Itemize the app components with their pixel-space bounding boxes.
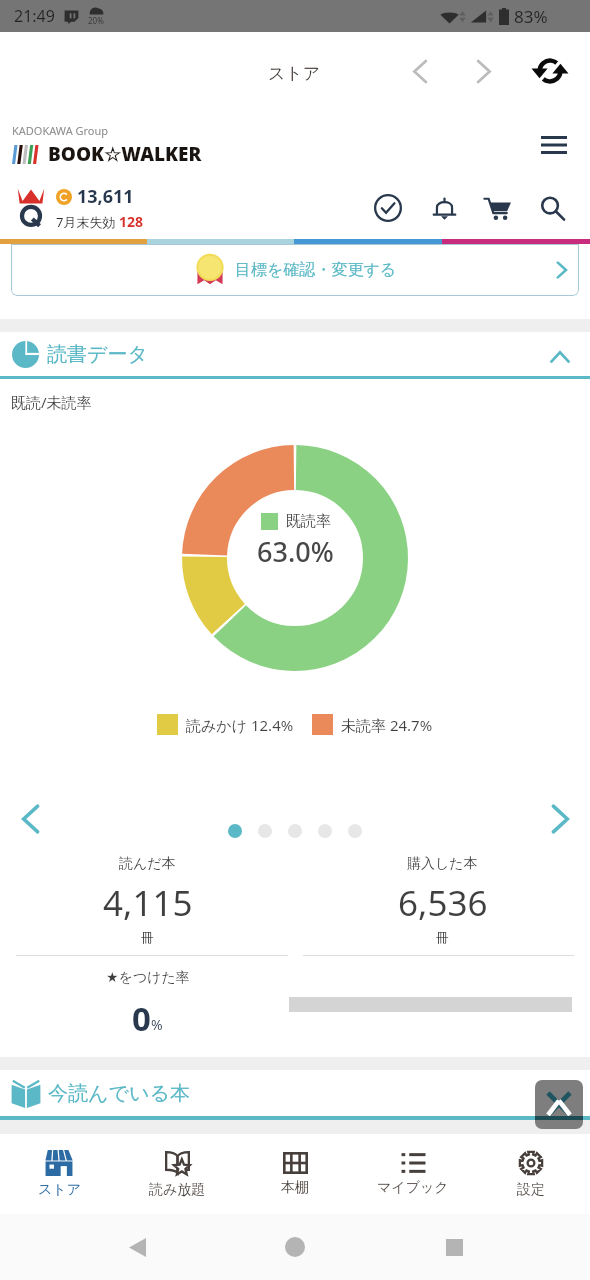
button[interactable]: Back [397,48,443,94]
button[interactable]: Home [273,1225,317,1269]
button[interactable]: Forward [461,48,507,94]
staticText: 冊 [436,929,449,945]
staticText: 未読率 24.7% [341,715,433,735]
staticText: 7月末失効 [56,213,119,231]
staticText: 83% [514,5,548,28]
staticText: 読みかけ 12.4% [186,715,294,735]
button[interactable]: Search [529,185,575,231]
staticText: 128 [119,212,144,231]
staticText: KADOKAWA Group [12,123,109,138]
button[interactable]: Previous [10,799,50,839]
staticText: ストア [38,1181,81,1199]
button[interactable]: Next [540,799,580,839]
staticText: 既読率 [286,512,331,531]
staticText: 購入した本 [407,855,478,873]
staticText: 読み放題 [149,1181,206,1199]
button[interactable]: Back [115,1225,159,1269]
staticText: 0 [132,996,151,1034]
staticText: 本棚 [281,1179,309,1197]
staticText: ★をつけた率 [106,969,190,987]
staticText: 設定 [517,1181,545,1199]
button[interactable]: 目標を確認・変更する [11,244,579,296]
staticText: BOOK☆WALKER [48,141,202,167]
staticText: 目標を確認・変更する [235,260,397,280]
staticText: 21:49 [14,5,55,27]
button[interactable]: Notifications [421,185,467,231]
staticText: マイブック [377,1179,449,1197]
button[interactable]: Cart [474,185,520,231]
button[interactable]: ストア [0,1141,118,1208]
staticText: 4,115 [103,879,193,927]
button[interactable]: 本棚 [236,1143,354,1206]
staticText: 6,536 [398,879,488,927]
staticText: 読書データ [47,342,148,367]
staticText: 13,611 [77,184,134,209]
button[interactable]: Recents [432,1225,476,1269]
button[interactable]: Close [535,1080,583,1129]
staticText: 既読/未読率 [11,392,92,412]
staticText: ストア [268,63,321,84]
staticText: 冊 [141,929,154,945]
button[interactable]: Menu [532,123,576,167]
button[interactable]: Reload [527,48,573,94]
button[interactable]: マイブック [354,1143,472,1206]
button[interactable]: 設定 [472,1141,590,1208]
staticText: % [151,1015,163,1034]
button[interactable]: 読み放題 [118,1141,236,1208]
button[interactable]: Collapse [542,339,578,375]
staticText: 20% [88,15,104,26]
staticText: 63.0% [257,533,334,570]
staticText: 今読んでいる本 [48,1081,190,1106]
button[interactable]: 読書データ [0,332,590,376]
staticText: 読んだ本 [119,855,176,873]
button[interactable]: Check [365,185,411,231]
